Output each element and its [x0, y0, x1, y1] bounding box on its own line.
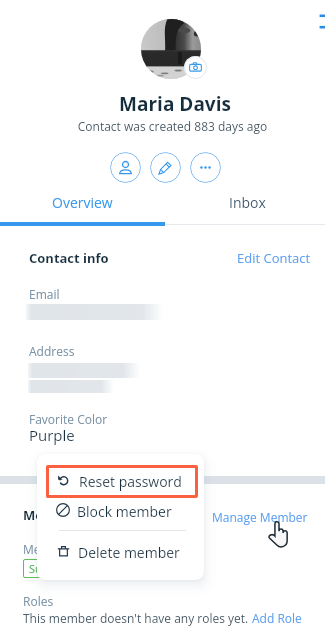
staticText: Manage Member — [212, 509, 308, 525]
button[interactable]: Add Role — [252, 610, 302, 626]
staticText: Block member — [77, 502, 172, 521]
button[interactable]: Change photo — [184, 56, 207, 79]
button[interactable]: Edit — [150, 152, 181, 183]
staticText: Member status — [23, 541, 108, 557]
staticText: Address — [29, 343, 75, 359]
staticText: Reset password — [79, 472, 182, 491]
staticText: Inbox — [229, 193, 266, 212]
staticText: Delete member — [78, 543, 180, 562]
button[interactable]: Expand — [318, 14, 325, 29]
button[interactable]: Delete member — [37, 538, 204, 568]
staticText: Roles — [23, 593, 54, 609]
staticText: Favorite Color — [29, 411, 108, 427]
button[interactable]: Overview — [0, 185, 165, 219]
staticText: Contact info — [29, 249, 109, 267]
button[interactable]: More options — [190, 152, 221, 183]
button[interactable]: Block member — [37, 498, 204, 528]
staticText: Purple — [29, 425, 75, 445]
staticText: Contact was created 883 days ago — [21, 118, 324, 134]
staticText: Subscribed — [29, 561, 86, 576]
button[interactable]: Inbox — [168, 185, 325, 219]
button[interactable]: Manage Member — [212, 509, 308, 525]
staticText: Overview — [52, 193, 113, 212]
button[interactable]: Contact details — [110, 152, 141, 183]
staticText: This member doesn't have any roles yet. — [23, 610, 252, 626]
staticText: Membership — [23, 506, 105, 524]
staticText: Add Role — [252, 610, 302, 626]
staticText: Edit Contact — [237, 249, 311, 267]
staticText: Email — [29, 286, 60, 302]
button[interactable]: Reset password — [37, 465, 204, 498]
staticText: Maria Davis — [23, 91, 325, 117]
button[interactable]: Edit Contact — [237, 249, 311, 267]
button[interactable]: Subscribed — [29, 561, 86, 576]
button[interactable]: Profile photo — [141, 19, 201, 79]
